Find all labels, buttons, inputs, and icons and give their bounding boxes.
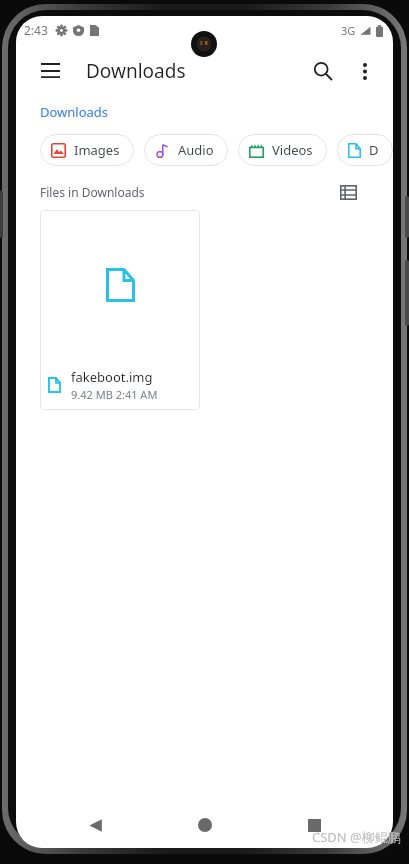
button[interactable]: fakeboot.img: [40, 210, 200, 410]
button[interactable]: More options: [345, 51, 385, 91]
staticText: 9.42 MB 2:41 AM: [71, 387, 158, 402]
button[interactable]: Search: [301, 49, 345, 93]
staticText: Images: [74, 141, 120, 159]
button[interactable]: Downloads: [40, 103, 109, 121]
button[interactable]: Audio: [144, 134, 228, 166]
staticText: Downloads: [86, 58, 186, 84]
staticText: Files in Downloads: [40, 184, 145, 200]
staticText: fakeboot.img: [71, 368, 153, 386]
button[interactable]: Recent apps: [284, 802, 344, 848]
staticText: 2:43: [24, 22, 48, 38]
staticText: Audio: [178, 141, 214, 159]
staticText: Videos: [272, 141, 313, 159]
button[interactable]: Documents: [337, 134, 393, 166]
staticText: CSDN @柳鲲鹏: [312, 828, 401, 846]
button[interactable]: Videos: [238, 134, 327, 166]
button[interactable]: Back: [65, 802, 125, 848]
button[interactable]: Switch to list view: [333, 177, 363, 207]
button[interactable]: Home: [175, 802, 235, 848]
staticText: Documents: [369, 141, 379, 159]
button[interactable]: Open navigation drawer: [28, 49, 72, 93]
staticText: 3G: [341, 23, 356, 38]
button[interactable]: Images: [40, 134, 134, 166]
